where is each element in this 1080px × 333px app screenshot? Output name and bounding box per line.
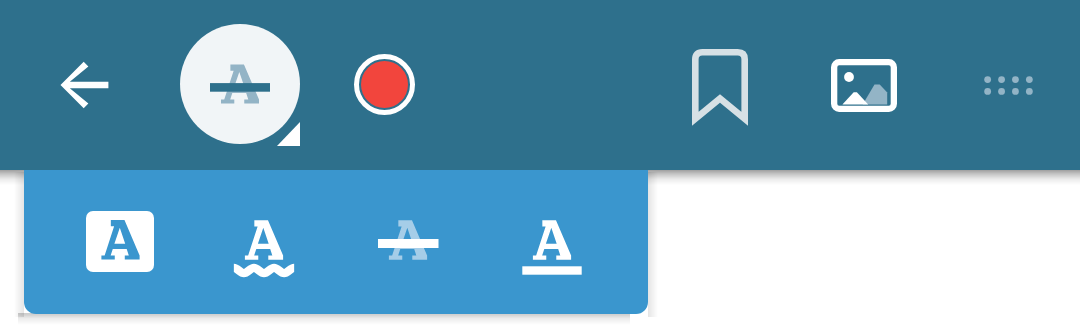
- button[interactable]: Back: [38, 0, 130, 170]
- button[interactable]: Strikethrough: [336, 169, 480, 314]
- button[interactable]: More options: [978, 0, 1038, 170]
- button[interactable]: Text style: [180, 24, 300, 144]
- button[interactable]: Bookmark: [692, 0, 748, 170]
- button[interactable]: Squiggly underline: [192, 169, 336, 314]
- button[interactable]: Normal text: [48, 169, 192, 314]
- button[interactable]: Insert image: [831, 0, 897, 170]
- button[interactable]: Highlight colour: [354, 54, 415, 115]
- button[interactable]: Underline: [480, 169, 624, 314]
